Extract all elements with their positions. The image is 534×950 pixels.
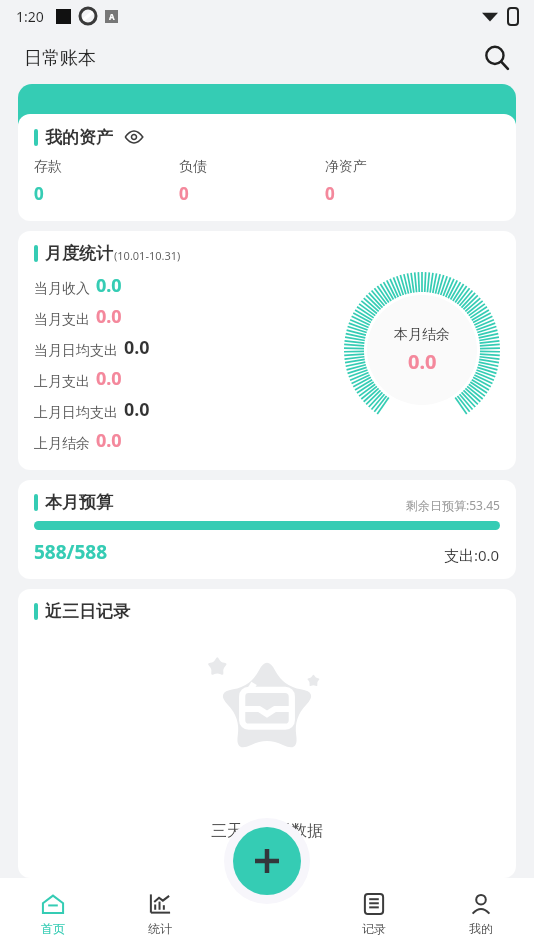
staticText: 三天内暂无数据 bbox=[211, 821, 323, 841]
staticText: 0.0 bbox=[96, 304, 122, 329]
staticText: 0.0 bbox=[96, 428, 122, 453]
staticText: 近三日记录 bbox=[45, 601, 130, 622]
staticText: 上月支出 bbox=[34, 373, 90, 391]
staticText: 统计 bbox=[148, 921, 172, 936]
button[interactable]: 记录 bbox=[320, 884, 427, 944]
staticText: 0.0 bbox=[96, 273, 122, 298]
staticText: 净资产 bbox=[325, 158, 367, 176]
button[interactable]: 首页 bbox=[0, 884, 106, 944]
button[interactable]: 本月预算 bbox=[18, 480, 516, 579]
staticText: 剩余日预算:53.45 bbox=[406, 497, 500, 513]
staticText: 本月预算 bbox=[45, 492, 113, 513]
staticText: 0 bbox=[179, 182, 189, 205]
staticText: (10.01-10.31) bbox=[114, 248, 181, 263]
staticText: 本月结余 bbox=[394, 326, 450, 344]
staticText: 我的资产 bbox=[45, 127, 113, 148]
staticText: 负债 bbox=[179, 158, 207, 176]
button[interactable]: 月度统计 bbox=[18, 231, 516, 470]
staticText: 1:20 bbox=[16, 7, 44, 26]
button[interactable]: Search bbox=[480, 41, 514, 75]
button[interactable]: 统计 bbox=[106, 884, 213, 944]
staticText: 上月结余 bbox=[34, 435, 90, 453]
staticText: 0.0 bbox=[96, 366, 122, 391]
staticText: 0.0 bbox=[124, 335, 150, 360]
staticText: 日常账本 bbox=[24, 47, 96, 70]
staticText: 当月支出 bbox=[34, 311, 90, 329]
staticText: 0.0 bbox=[124, 397, 150, 422]
staticText: 我的 bbox=[469, 921, 493, 936]
button[interactable]: Add record bbox=[233, 827, 301, 895]
button[interactable]: 我的资产 bbox=[18, 114, 516, 221]
button[interactable]: 我的 bbox=[427, 884, 534, 944]
staticText: 588/588 bbox=[34, 539, 444, 565]
staticText: 首页 bbox=[41, 921, 65, 936]
staticText: 0 bbox=[325, 182, 335, 205]
staticText: 支出:0.0 bbox=[444, 545, 500, 565]
staticText: 当月收入 bbox=[34, 280, 90, 298]
staticText: 上月日均支出 bbox=[34, 404, 118, 422]
staticText: 月度统计 bbox=[45, 243, 113, 264]
staticText: A bbox=[109, 11, 115, 22]
staticText: 记录 bbox=[362, 921, 386, 936]
button[interactable]: Toggle visibility bbox=[123, 126, 145, 148]
staticText: 存款 bbox=[34, 158, 62, 176]
staticText: 0.0 bbox=[408, 348, 437, 375]
staticText: 当月日均支出 bbox=[34, 342, 118, 360]
staticText: 0 bbox=[34, 182, 44, 205]
